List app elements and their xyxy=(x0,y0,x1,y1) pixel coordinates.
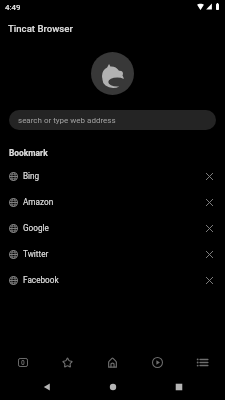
staticText: Google xyxy=(23,223,49,233)
staticText: Facebook xyxy=(23,275,59,285)
staticText: Bookmark xyxy=(9,148,48,158)
staticText: Tincat Browser xyxy=(8,23,73,34)
button[interactable]: Recents xyxy=(166,376,191,398)
staticText: Bing xyxy=(23,171,40,181)
button[interactable]: Home xyxy=(90,350,135,374)
button[interactable]: Bookmarks xyxy=(45,350,90,374)
button[interactable]: Menu xyxy=(180,350,225,374)
button[interactable]: Google xyxy=(0,215,225,241)
button[interactable]: Remove Amazon xyxy=(199,192,219,212)
staticText: search or type web address xyxy=(18,116,116,125)
staticText: Twitter xyxy=(23,249,49,259)
button[interactable]: Remove Bing xyxy=(199,166,219,186)
button[interactable]: Twitter xyxy=(0,241,225,267)
button[interactable]: Media xyxy=(135,350,180,374)
button[interactable]: Tabs: 0 open xyxy=(0,350,45,374)
button[interactable]: Remove Facebook xyxy=(199,270,219,290)
button[interactable]: search or type web address xyxy=(9,110,216,130)
button[interactable]: Bing xyxy=(0,163,225,189)
button[interactable]: Remove Google xyxy=(199,218,219,238)
staticText: 0 xyxy=(21,359,25,367)
button[interactable]: Remove Twitter xyxy=(199,244,219,264)
button[interactable]: Tincat Browser xyxy=(0,18,225,38)
staticText: 4:49 xyxy=(5,3,21,12)
button[interactable]: Back xyxy=(34,376,59,398)
button[interactable]: Home xyxy=(100,376,125,398)
button[interactable]: Amazon xyxy=(0,189,225,215)
staticText: Amazon xyxy=(23,197,54,207)
button[interactable]: Tincat logo xyxy=(91,52,134,95)
button[interactable]: Facebook xyxy=(0,267,225,293)
